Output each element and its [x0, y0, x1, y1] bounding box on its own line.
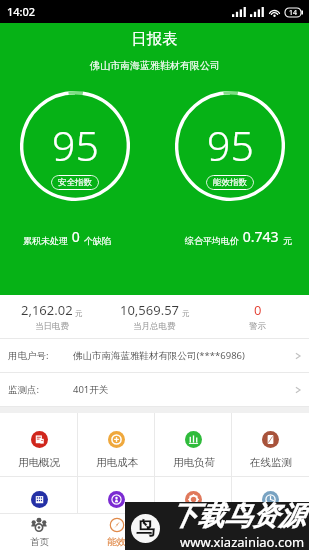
staticText: 综合平均电价	[185, 235, 239, 246]
button[interactable]: 用电概况	[0, 413, 78, 476]
staticText: 用电负荷	[173, 456, 215, 469]
staticText: 2,162.02	[21, 301, 73, 319]
button[interactable]: 功能入口	[0, 477, 78, 513]
button[interactable]: 2,162.02	[0, 295, 103, 338]
button[interactable]: 能效指数	[175, 91, 285, 201]
button[interactable]: 功能入口	[155, 477, 232, 513]
button[interactable]: 用电负荷	[155, 413, 232, 476]
staticText: 0	[68, 227, 84, 246]
staticText: 能效指数	[213, 177, 247, 188]
staticText: 当日电费	[35, 321, 69, 332]
staticText: 报表	[184, 536, 203, 548]
button[interactable]: 10,569.57	[103, 295, 206, 338]
staticText: 14:02	[7, 4, 36, 19]
staticText: 401开关	[73, 383, 109, 396]
staticText: 在线监测	[250, 456, 292, 469]
staticText: 下载鸟资源	[170, 499, 305, 533]
staticText: 10,569.57	[120, 301, 180, 319]
staticText: 95	[52, 117, 99, 173]
staticText: 佛山市南海蓝雅鞋材有限公司	[90, 59, 220, 72]
button[interactable]: 在线监测	[232, 413, 309, 476]
staticText: 0.743	[239, 227, 283, 246]
button[interactable]: 功能入口	[78, 477, 155, 513]
button[interactable]: 安全指数	[20, 91, 130, 201]
button[interactable]: 我的	[232, 514, 309, 550]
button[interactable]: 能效	[78, 514, 155, 550]
staticText: 累积未处理	[23, 235, 68, 246]
staticText: 监测点:	[8, 383, 63, 396]
button[interactable]: 报表	[155, 514, 232, 550]
staticText: 当月总电费	[133, 321, 176, 332]
staticText: 14	[289, 8, 298, 17]
staticText: 0	[254, 301, 262, 319]
staticText: 鸟	[136, 517, 155, 541]
button[interactable]: 用电成本	[78, 413, 155, 476]
staticText: 我的	[261, 536, 280, 548]
staticText: 警示	[249, 321, 266, 332]
button[interactable]: 首页	[0, 514, 78, 550]
button[interactable]: 0	[206, 295, 309, 338]
staticText: 元	[180, 308, 190, 318]
staticText: 用电成本	[96, 456, 138, 469]
staticText: 元	[73, 308, 83, 318]
staticText: 安全指数	[58, 177, 92, 188]
staticText: 能效	[107, 536, 126, 548]
staticText: 个缺陷	[84, 235, 111, 246]
button[interactable]: 功能入口	[232, 477, 309, 513]
button[interactable]: 用电户号:	[0, 339, 309, 372]
staticText: 日报表	[131, 29, 178, 49]
staticText: 首页	[30, 536, 49, 548]
button[interactable]: 监测点:	[0, 373, 309, 406]
staticText: 佛山市南海蓝雅鞋材有限公司(****6986)	[73, 349, 245, 362]
staticText: 用电概况	[18, 456, 60, 469]
staticText: 元	[283, 235, 292, 246]
staticText: www.xiazainiao.com	[180, 533, 305, 547]
staticText: 用电户号:	[8, 349, 63, 362]
staticText: 95	[207, 117, 254, 173]
